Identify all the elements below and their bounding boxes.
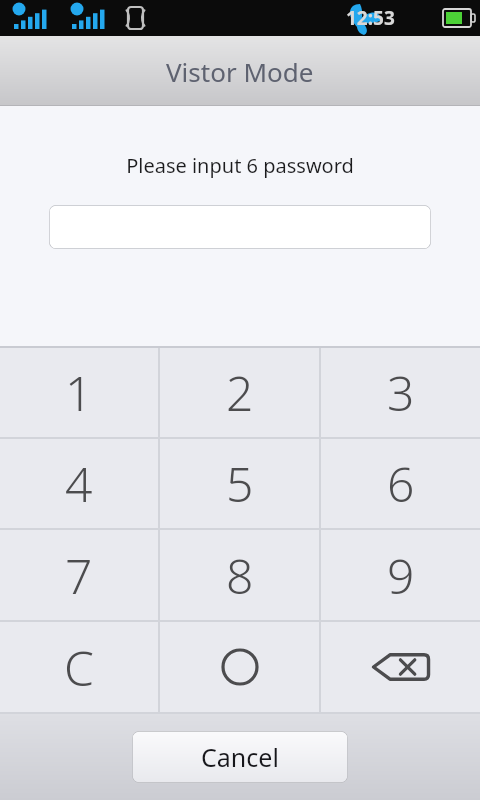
button[interactable]: 9 bbox=[321, 530, 480, 620]
button[interactable] bbox=[49, 205, 431, 249]
button[interactable]: Cancel bbox=[132, 731, 348, 783]
staticText: 9 bbox=[387, 543, 415, 608]
button[interactable]: 7 bbox=[0, 530, 158, 620]
button[interactable]: 5 bbox=[160, 439, 319, 528]
staticText: 6 bbox=[387, 451, 415, 516]
staticText: Cancel bbox=[201, 740, 279, 774]
button[interactable] bbox=[160, 622, 319, 712]
button[interactable]: Backspace bbox=[321, 622, 480, 712]
staticText: 4 bbox=[65, 451, 93, 516]
staticText: Vistor Mode bbox=[166, 54, 314, 89]
button[interactable]: 1 bbox=[0, 348, 158, 437]
staticText: 12:53 bbox=[346, 5, 395, 31]
button[interactable]: Clear bbox=[0, 622, 158, 712]
button[interactable]: 8 bbox=[160, 530, 319, 620]
staticText: C bbox=[64, 635, 94, 700]
staticText: 2 bbox=[226, 360, 254, 425]
staticText: 1 bbox=[65, 360, 93, 425]
staticText: 5 bbox=[226, 451, 254, 516]
button[interactable]: 4 bbox=[0, 439, 158, 528]
button[interactable]: 2 bbox=[160, 348, 319, 437]
staticText: 8 bbox=[226, 543, 254, 608]
staticText: Please input 6 password bbox=[126, 152, 354, 179]
button[interactable]: 6 bbox=[321, 439, 480, 528]
staticText: 3 bbox=[387, 360, 415, 425]
button[interactable]: 3 bbox=[321, 348, 480, 437]
staticText: 7 bbox=[65, 543, 93, 608]
